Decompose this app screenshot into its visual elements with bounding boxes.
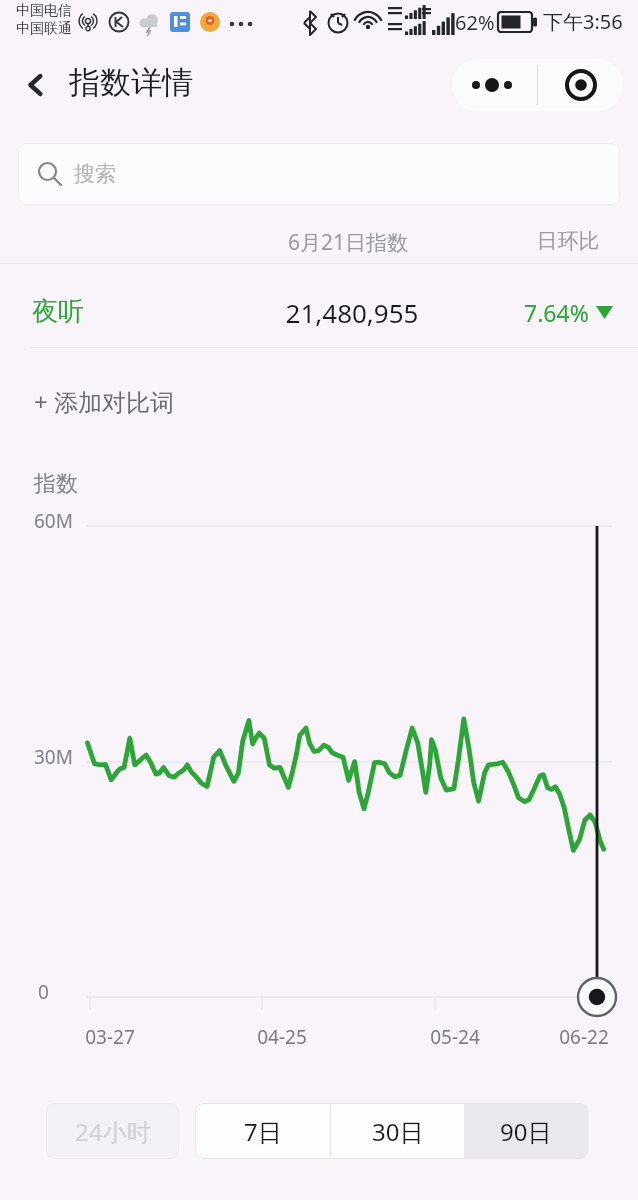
staticText: 05-24	[405, 1024, 505, 1050]
staticText: 30M	[34, 744, 73, 770]
button[interactable]: Close	[538, 59, 623, 111]
staticText: 04-25	[232, 1024, 332, 1050]
button[interactable]: 夜听	[0, 264, 638, 347]
button[interactable]: 7日	[195, 1103, 330, 1159]
staticText: 6月21日指数	[248, 228, 448, 257]
staticText: 下午3:56	[543, 8, 623, 35]
staticText: 24小时	[75, 1115, 151, 1148]
staticText: 62%	[455, 9, 495, 36]
staticText: 搜索	[74, 161, 116, 187]
button[interactable]: Back	[12, 62, 58, 108]
button[interactable]: 搜索	[18, 143, 620, 205]
button[interactable]: 24小时	[46, 1103, 179, 1159]
staticText: 60M	[34, 508, 73, 534]
button[interactable]: 90日	[464, 1103, 588, 1159]
staticText: + 添加对比词	[34, 385, 174, 418]
staticText: 中国联通	[16, 20, 72, 38]
staticText: 21,480,955	[252, 295, 452, 330]
staticText: 指数详情	[69, 63, 193, 102]
staticText: 90日	[500, 1115, 552, 1148]
staticText: 03-27	[60, 1024, 160, 1050]
staticText: 日环比	[488, 228, 638, 254]
staticText: 夜听	[32, 295, 84, 328]
staticText: 30日	[372, 1115, 424, 1148]
staticText: 06-22	[534, 1024, 634, 1050]
staticText: 7日	[244, 1115, 282, 1148]
staticText: 中国电信	[16, 2, 72, 20]
staticText: 0	[38, 979, 49, 1005]
button[interactable]: 30日	[331, 1103, 464, 1159]
button[interactable]: More	[452, 59, 537, 111]
staticText: 指数	[34, 470, 78, 498]
button[interactable]: + 添加对比词	[0, 348, 638, 438]
staticText: 7.64%	[524, 297, 589, 328]
